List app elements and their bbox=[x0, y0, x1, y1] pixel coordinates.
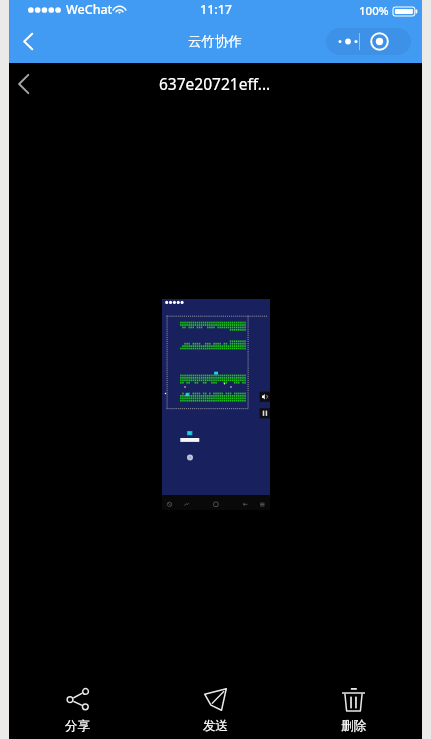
button[interactable]: Back bbox=[8, 65, 38, 103]
button[interactable]: Menu bbox=[326, 28, 411, 55]
button[interactable]: 分享 bbox=[9, 682, 146, 739]
staticText: 100% bbox=[359, 3, 389, 19]
staticText: 发送 bbox=[203, 718, 228, 734]
staticText: 删除 bbox=[341, 718, 366, 734]
button[interactable]: 发送 bbox=[146, 682, 284, 739]
staticText: 637e20721eff... bbox=[159, 73, 271, 94]
button[interactable]: 删除 bbox=[284, 682, 422, 739]
button[interactable]: Back bbox=[14, 23, 42, 59]
staticText: 云竹协作 bbox=[188, 33, 242, 50]
staticText: 分享 bbox=[65, 718, 90, 734]
staticText: WeChat bbox=[66, 1, 113, 18]
staticText: 11:17 bbox=[200, 1, 233, 18]
